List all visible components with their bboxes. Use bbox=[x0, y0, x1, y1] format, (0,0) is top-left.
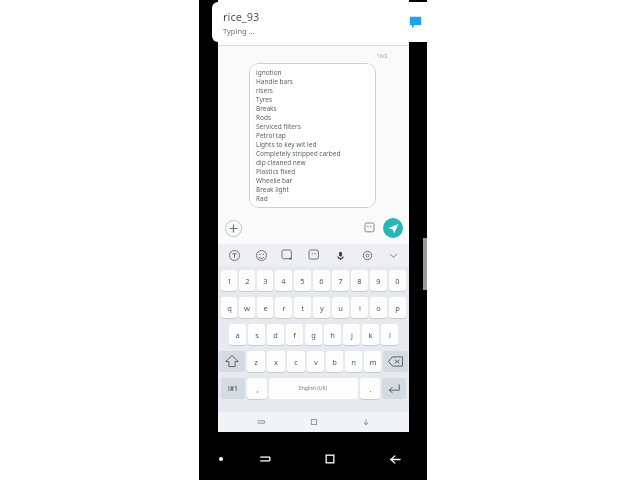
button[interactable]: Backspace bbox=[383, 351, 408, 372]
button[interactable]: o bbox=[370, 297, 387, 318]
staticText: y bbox=[320, 303, 324, 313]
staticText: Typing ... bbox=[223, 26, 255, 36]
staticText: 9 bbox=[376, 276, 381, 286]
staticText: g bbox=[311, 330, 316, 340]
staticText: 1 bbox=[227, 276, 232, 286]
button[interactable]: Shift bbox=[219, 351, 245, 372]
button[interactable]: w bbox=[239, 297, 255, 318]
staticText: k bbox=[368, 330, 373, 340]
staticText: 16/2 bbox=[377, 53, 388, 60]
button[interactable]: Sticker bbox=[362, 220, 378, 236]
button[interactable]: s bbox=[248, 324, 265, 345]
staticText: p bbox=[395, 303, 400, 313]
button[interactable]: m bbox=[364, 351, 381, 372]
button[interactable]: d bbox=[267, 324, 284, 345]
button[interactable]: Stickers bbox=[306, 247, 322, 263]
button[interactable]: Translate bbox=[226, 247, 242, 263]
button[interactable]: e bbox=[257, 297, 273, 318]
button[interactable]: Recents bbox=[252, 413, 270, 431]
staticText: 7 bbox=[338, 276, 343, 286]
button[interactable]: 7 bbox=[332, 270, 349, 291]
staticText: u bbox=[338, 303, 343, 313]
button[interactable]: Home bbox=[305, 413, 323, 431]
button[interactable]: More bbox=[385, 247, 401, 263]
button[interactable]: z bbox=[247, 351, 265, 372]
button[interactable]: 8 bbox=[351, 270, 368, 291]
button[interactable]: . bbox=[360, 378, 380, 399]
staticText: 2 bbox=[245, 276, 250, 286]
staticText: 3 bbox=[263, 276, 268, 286]
button[interactable]: p bbox=[389, 297, 406, 318]
button[interactable]: c bbox=[287, 351, 305, 372]
staticText: Break light bbox=[256, 185, 289, 194]
staticText: v bbox=[314, 357, 318, 367]
staticText: Serviced filters bbox=[256, 122, 301, 131]
button[interactable]: English (UK) bbox=[269, 378, 358, 399]
button[interactable]: !#1 bbox=[221, 378, 245, 399]
button[interactable]: u bbox=[332, 297, 349, 318]
button[interactable]: 3 bbox=[257, 270, 273, 291]
staticText: b bbox=[332, 357, 337, 367]
staticText: English (UK) bbox=[299, 385, 328, 392]
staticText: Lights to key wit led bbox=[256, 140, 317, 149]
button[interactable]: Settings bbox=[359, 247, 375, 263]
staticText: a bbox=[235, 330, 240, 340]
staticText: ignotion bbox=[256, 68, 282, 77]
button[interactable]: , bbox=[247, 378, 267, 399]
button[interactable]: Voice input bbox=[332, 247, 348, 263]
button[interactable]: 1 bbox=[221, 270, 237, 291]
button[interactable]: v bbox=[307, 351, 324, 372]
button[interactable]: g bbox=[305, 324, 322, 345]
staticText: Plastics fixed bbox=[256, 167, 296, 176]
staticText: e bbox=[263, 303, 268, 313]
staticText: 0 bbox=[395, 276, 400, 286]
staticText: m bbox=[369, 357, 377, 367]
button[interactable]: Home bbox=[317, 446, 343, 472]
button[interactable]: Add attachment bbox=[224, 219, 243, 238]
button[interactable]: b bbox=[326, 351, 343, 372]
staticText: Tyres bbox=[256, 95, 273, 104]
staticText: f bbox=[293, 330, 296, 340]
button[interactable]: Send bbox=[383, 218, 403, 238]
button[interactable]: f bbox=[286, 324, 303, 345]
button[interactable]: 6 bbox=[313, 270, 330, 291]
button[interactable]: Back bbox=[382, 446, 408, 472]
button[interactable]: 9 bbox=[370, 270, 387, 291]
staticText: r bbox=[282, 303, 286, 313]
button[interactable]: 2 bbox=[239, 270, 255, 291]
button[interactable]: i bbox=[351, 297, 368, 318]
staticText: l bbox=[389, 330, 391, 340]
staticText: risers bbox=[256, 86, 273, 95]
button[interactable]: Recent apps bbox=[252, 446, 278, 472]
button[interactable]: x bbox=[267, 351, 285, 372]
button[interactable]: 0 bbox=[389, 270, 406, 291]
staticText: i bbox=[359, 303, 361, 313]
button[interactable]: t bbox=[294, 297, 311, 318]
button[interactable]: y bbox=[313, 297, 330, 318]
button[interactable]: h bbox=[324, 324, 341, 345]
staticText: , bbox=[256, 384, 259, 394]
button[interactable]: 4 bbox=[275, 270, 292, 291]
button[interactable]: GIF bbox=[279, 247, 295, 263]
button[interactable]: rice_93 bbox=[212, 2, 434, 42]
staticText: Wheelie bar bbox=[256, 176, 293, 185]
button[interactable]: Hide keyboard bbox=[357, 413, 375, 431]
staticText: x bbox=[274, 357, 278, 367]
button[interactable]: ignotion bbox=[256, 68, 369, 203]
button[interactable]: n bbox=[345, 351, 362, 372]
button[interactable]: 5 bbox=[294, 270, 311, 291]
button[interactable]: q bbox=[221, 297, 237, 318]
staticText: Breaks bbox=[256, 104, 277, 113]
button[interactable]: l bbox=[381, 324, 398, 345]
button[interactable]: j bbox=[343, 324, 360, 345]
button[interactable]: Emoji bbox=[253, 247, 269, 263]
staticText: o bbox=[376, 303, 381, 313]
staticText: Rad bbox=[256, 194, 268, 203]
button[interactable]: a bbox=[229, 324, 246, 345]
button[interactable]: Enter bbox=[382, 378, 406, 399]
staticText: z bbox=[254, 357, 258, 367]
button[interactable]: k bbox=[362, 324, 379, 345]
staticText: s bbox=[255, 330, 259, 340]
button[interactable]: r bbox=[275, 297, 292, 318]
staticText: q bbox=[227, 303, 232, 313]
